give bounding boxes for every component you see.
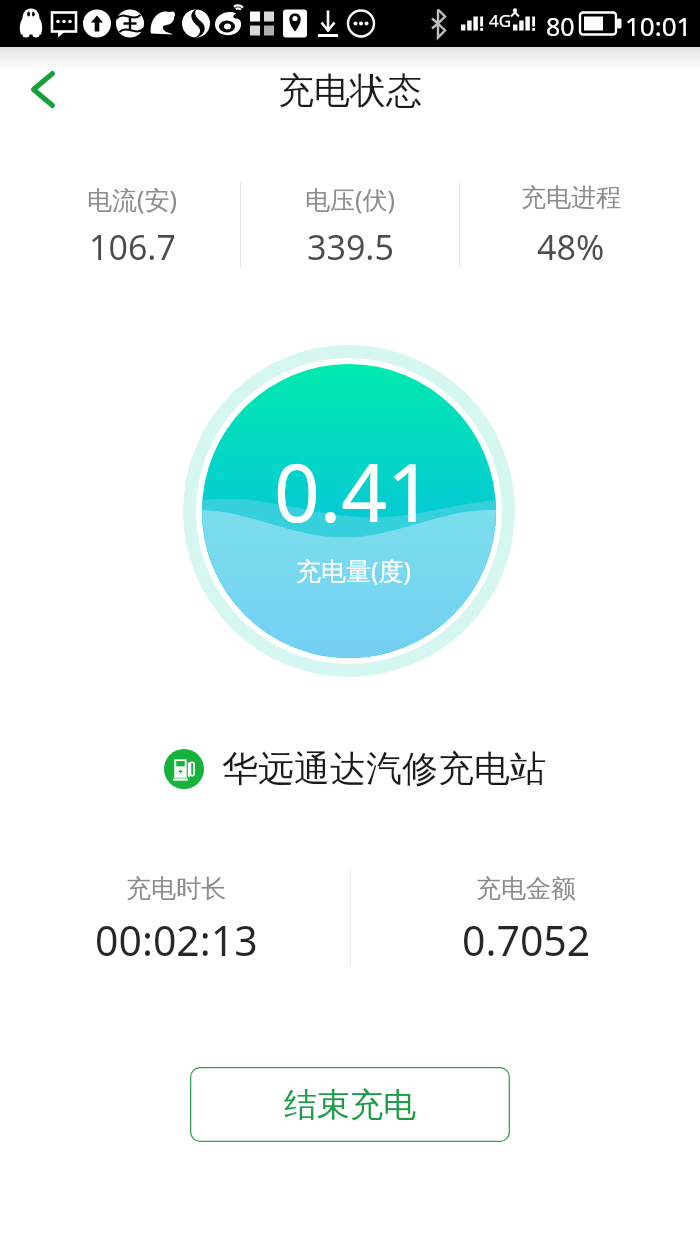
staticText: 339.5 <box>307 224 394 270</box>
button[interactable]: 电流(安) <box>0 182 282 270</box>
staticText: 4G <box>489 9 512 32</box>
button[interactable]: 电压(伏) <box>200 182 500 270</box>
button[interactable]: 充电进程 <box>421 182 700 270</box>
button[interactable]: Back <box>8 47 74 132</box>
staticText: 充电金额 <box>476 873 576 904</box>
button[interactable]: 充电金额 <box>376 873 676 965</box>
staticText: 电流(安) <box>87 182 178 216</box>
staticText: 充电状态 <box>278 68 422 113</box>
staticText: 充电时长 <box>126 873 226 904</box>
staticText: 106.7 <box>89 224 176 270</box>
staticText: 48% <box>537 224 605 270</box>
staticText: 00:02:13 <box>95 912 258 968</box>
button[interactable]: 华远通达汽修充电站 <box>164 746 546 791</box>
staticText: 10:01 <box>625 8 692 43</box>
staticText: 充电量(度) <box>296 553 412 587</box>
staticText: 华远通达汽修充电站 <box>222 746 546 791</box>
staticText: 0.7052 <box>462 912 591 968</box>
staticText: 结束充电 <box>284 1084 416 1126</box>
staticText: 80 <box>546 9 575 43</box>
button[interactable]: 充电时长 <box>26 873 326 965</box>
staticText: 电压(伏) <box>305 182 396 216</box>
button[interactable]: 结束充电 <box>190 1067 510 1142</box>
staticText: 充电进程 <box>521 182 621 213</box>
staticText: 0.41 <box>274 436 433 545</box>
